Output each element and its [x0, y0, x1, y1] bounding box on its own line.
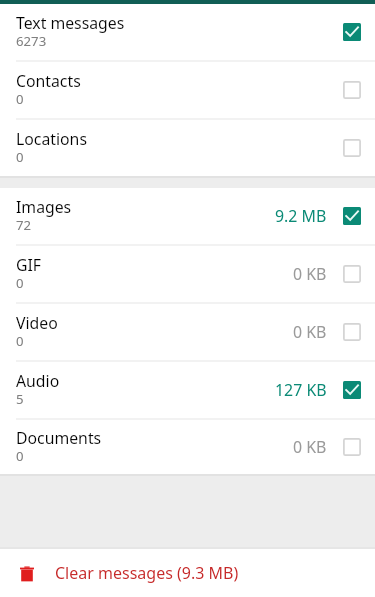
- staticText: Images: [16, 196, 72, 218]
- button[interactable]: GIF: [0, 246, 375, 302]
- button[interactable]: Selected: [330, 368, 374, 412]
- staticText: Contacts: [16, 70, 81, 92]
- button[interactable]: Locations: [0, 120, 375, 176]
- staticText: Video: [16, 312, 58, 334]
- staticText: 5: [16, 390, 24, 408]
- staticText: Clear messages (9.3 MB): [55, 562, 239, 584]
- button[interactable]: Delete: [0, 549, 375, 597]
- staticText: 0: [16, 148, 24, 166]
- staticText: 9.2 MB: [275, 205, 327, 227]
- staticText: Text messages: [16, 12, 125, 34]
- staticText: 0: [16, 447, 24, 465]
- button[interactable]: Not selected: [330, 68, 374, 112]
- button[interactable]: Video: [0, 304, 375, 360]
- button[interactable]: Documents: [0, 420, 375, 474]
- staticText: Locations: [16, 128, 87, 150]
- button[interactable]: Images: [0, 188, 375, 244]
- staticText: 0 KB: [293, 321, 327, 343]
- button[interactable]: Contacts: [0, 62, 375, 118]
- staticText: 0 KB: [293, 263, 327, 285]
- button[interactable]: Not selected: [330, 425, 374, 469]
- staticText: 6273: [16, 32, 47, 50]
- button[interactable]: Not selected: [330, 252, 374, 296]
- staticText: 0: [16, 90, 24, 108]
- button[interactable]: Not selected: [330, 126, 374, 170]
- button[interactable]: Text messages: [0, 4, 375, 60]
- other: Delete: [20, 565, 34, 582]
- staticText: 0: [16, 332, 24, 350]
- staticText: Documents: [16, 427, 102, 449]
- staticText: 0: [16, 274, 24, 292]
- staticText: 127 KB: [275, 379, 327, 401]
- staticText: Audio: [16, 370, 60, 392]
- button[interactable]: Selected: [330, 194, 374, 238]
- staticText: GIF: [16, 254, 42, 276]
- staticText: 72: [16, 216, 32, 234]
- button[interactable]: Selected: [330, 10, 374, 54]
- staticText: 0 KB: [293, 436, 327, 458]
- button[interactable]: Audio: [0, 362, 375, 418]
- button[interactable]: Not selected: [330, 310, 374, 354]
